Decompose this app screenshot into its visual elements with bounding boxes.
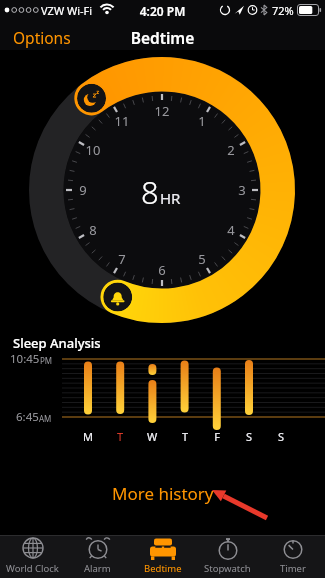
- staticText: More history: [112, 482, 214, 505]
- staticText: Options: [13, 27, 71, 48]
- staticText: Bedtime: [0, 27, 325, 48]
- staticText: 10:45: [10, 351, 40, 367]
- staticText: Sleep Analysis: [13, 334, 101, 352]
- button[interactable]: Options: [8, 22, 76, 53]
- staticText: W: [142, 429, 162, 444]
- staticText: 7: [110, 250, 134, 268]
- button[interactable]: Stopwatch: [195, 536, 260, 578]
- staticText: M: [78, 429, 98, 444]
- staticText: 72%: [272, 3, 294, 18]
- staticText: HR: [160, 188, 181, 208]
- staticText: 6: [150, 261, 174, 279]
- staticText: T: [110, 429, 130, 444]
- staticText: VZW Wi-Fi: [41, 3, 93, 18]
- staticText: 8: [141, 171, 159, 213]
- staticText: 5: [190, 250, 214, 268]
- staticText: 12: [150, 102, 174, 120]
- staticText: 4:20 PM: [0, 3, 325, 19]
- staticText: F: [207, 429, 227, 444]
- button[interactable]: Alarm: [65, 536, 130, 578]
- staticText: T: [175, 429, 195, 444]
- staticText: 11: [110, 112, 134, 130]
- staticText: 1: [190, 112, 214, 130]
- staticText: Timer: [280, 562, 306, 575]
- staticText: 10: [81, 141, 105, 159]
- staticText: 3: [230, 181, 254, 199]
- button[interactable]: World Clock: [0, 536, 65, 578]
- staticText: 2: [219, 141, 243, 159]
- staticText: 8: [81, 221, 105, 239]
- staticText: 4: [219, 221, 243, 239]
- staticText: 6:45: [16, 409, 39, 425]
- button[interactable]: More history: [108, 478, 218, 509]
- staticText: PM: [40, 355, 53, 366]
- staticText: AM: [39, 413, 52, 424]
- staticText: S: [271, 429, 291, 444]
- staticText: World Clock: [6, 562, 59, 575]
- staticText: 9: [71, 181, 95, 199]
- staticText: S: [239, 429, 259, 444]
- staticText: Stopwatch: [204, 562, 251, 575]
- button[interactable]: Timer: [260, 536, 325, 578]
- button[interactable]: Bedtime: [130, 536, 195, 578]
- staticText: Bedtime: [144, 562, 182, 575]
- staticText: Alarm: [84, 562, 111, 575]
